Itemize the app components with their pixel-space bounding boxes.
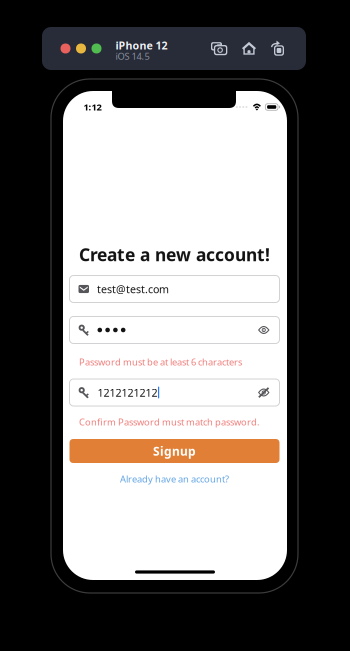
staticText: Signup: [153, 443, 196, 459]
button[interactable]: Rotate device: [271, 41, 285, 55]
staticText: 1:12: [83, 101, 101, 113]
button[interactable]: Take screenshot: [211, 41, 227, 55]
staticText: iOS 14.5: [115, 50, 149, 62]
staticText: Confirm Password must match password.: [79, 416, 260, 428]
button[interactable]: Zoom window: [91, 43, 101, 53]
staticText: test@test.com: [97, 282, 169, 296]
button[interactable]: Home: [242, 41, 256, 55]
button[interactable]: Signup: [69, 439, 279, 463]
staticText: 1212121212: [97, 385, 157, 400]
button[interactable]: [69, 316, 279, 343]
staticText: Already have an account?: [120, 473, 229, 485]
button[interactable]: Minimize window: [76, 43, 86, 53]
staticText: iPhone 12: [115, 38, 167, 52]
button[interactable]: Already have an account?: [120, 473, 229, 485]
button[interactable]: 1212121212: [69, 379, 279, 406]
staticText: Create a new account!: [79, 243, 270, 266]
button[interactable]: Close window: [60, 43, 70, 53]
staticText: Password must be at least 6 characters: [79, 356, 242, 368]
